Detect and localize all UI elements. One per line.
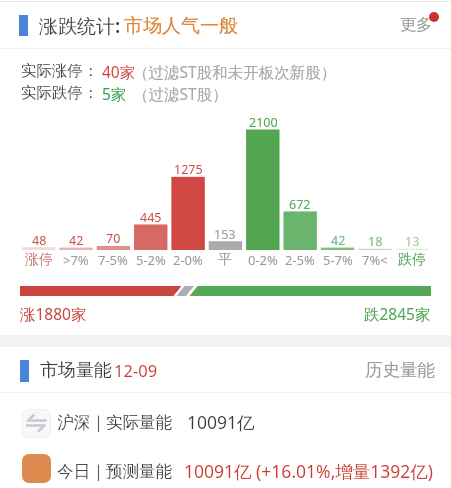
staticText: 7-5% — [98, 251, 128, 269]
staticText: 平 — [218, 251, 232, 269]
staticText: 历史量能 — [365, 359, 435, 381]
button[interactable] — [0, 398, 451, 444]
staticText: 42 — [69, 232, 84, 249]
staticText: 5家 — [102, 83, 127, 104]
staticText: 445 — [140, 209, 162, 226]
staticText: 7%< — [362, 251, 388, 269]
staticText: 2-0% — [173, 251, 203, 269]
staticText: 42 — [331, 232, 346, 249]
button[interactable] — [0, 352, 451, 390]
staticText: 40家 — [102, 61, 136, 82]
staticText: 70 — [106, 230, 121, 247]
staticText: 实际涨停： — [21, 61, 99, 81]
staticText: 1275 — [174, 161, 203, 178]
staticText: 48 — [32, 232, 47, 249]
staticText: 18 — [368, 233, 383, 250]
staticText: 市场量能 — [40, 359, 112, 382]
staticText: 涨跌统计: — [39, 13, 121, 39]
staticText: 市场人气一般 — [124, 14, 238, 38]
staticText: 12-09 — [114, 359, 158, 381]
staticText: 10091亿 (+16.01%,增量1392亿) — [184, 459, 434, 483]
staticText: 672 — [289, 196, 311, 213]
staticText: 跌停 — [398, 251, 426, 269]
staticText: >7% — [63, 251, 89, 269]
staticText: 153 — [214, 226, 236, 243]
staticText: 5-7% — [323, 251, 353, 269]
staticText: 2100 — [249, 114, 278, 131]
staticText: 10091亿 — [187, 410, 255, 434]
button[interactable] — [0, 446, 451, 488]
staticText: 跌2845家 — [364, 303, 431, 324]
staticText: 更多 — [400, 15, 432, 35]
staticText: 今日｜预测量能 — [57, 461, 173, 482]
staticText: （过滤ST股和未开板次新股） — [133, 61, 337, 82]
staticText: 涨停 — [25, 251, 53, 269]
staticText: 5-2% — [136, 251, 166, 269]
staticText: 2-5% — [285, 251, 315, 269]
button[interactable] — [0, 6, 451, 46]
staticText: （过滤ST股） — [133, 83, 228, 104]
staticText: 沪深｜实际量能 — [57, 412, 173, 433]
staticText: 实际跌停： — [21, 83, 99, 103]
staticText: 涨1880家 — [20, 303, 87, 324]
staticText: 0-2% — [248, 251, 278, 269]
staticText: 13 — [405, 233, 420, 250]
